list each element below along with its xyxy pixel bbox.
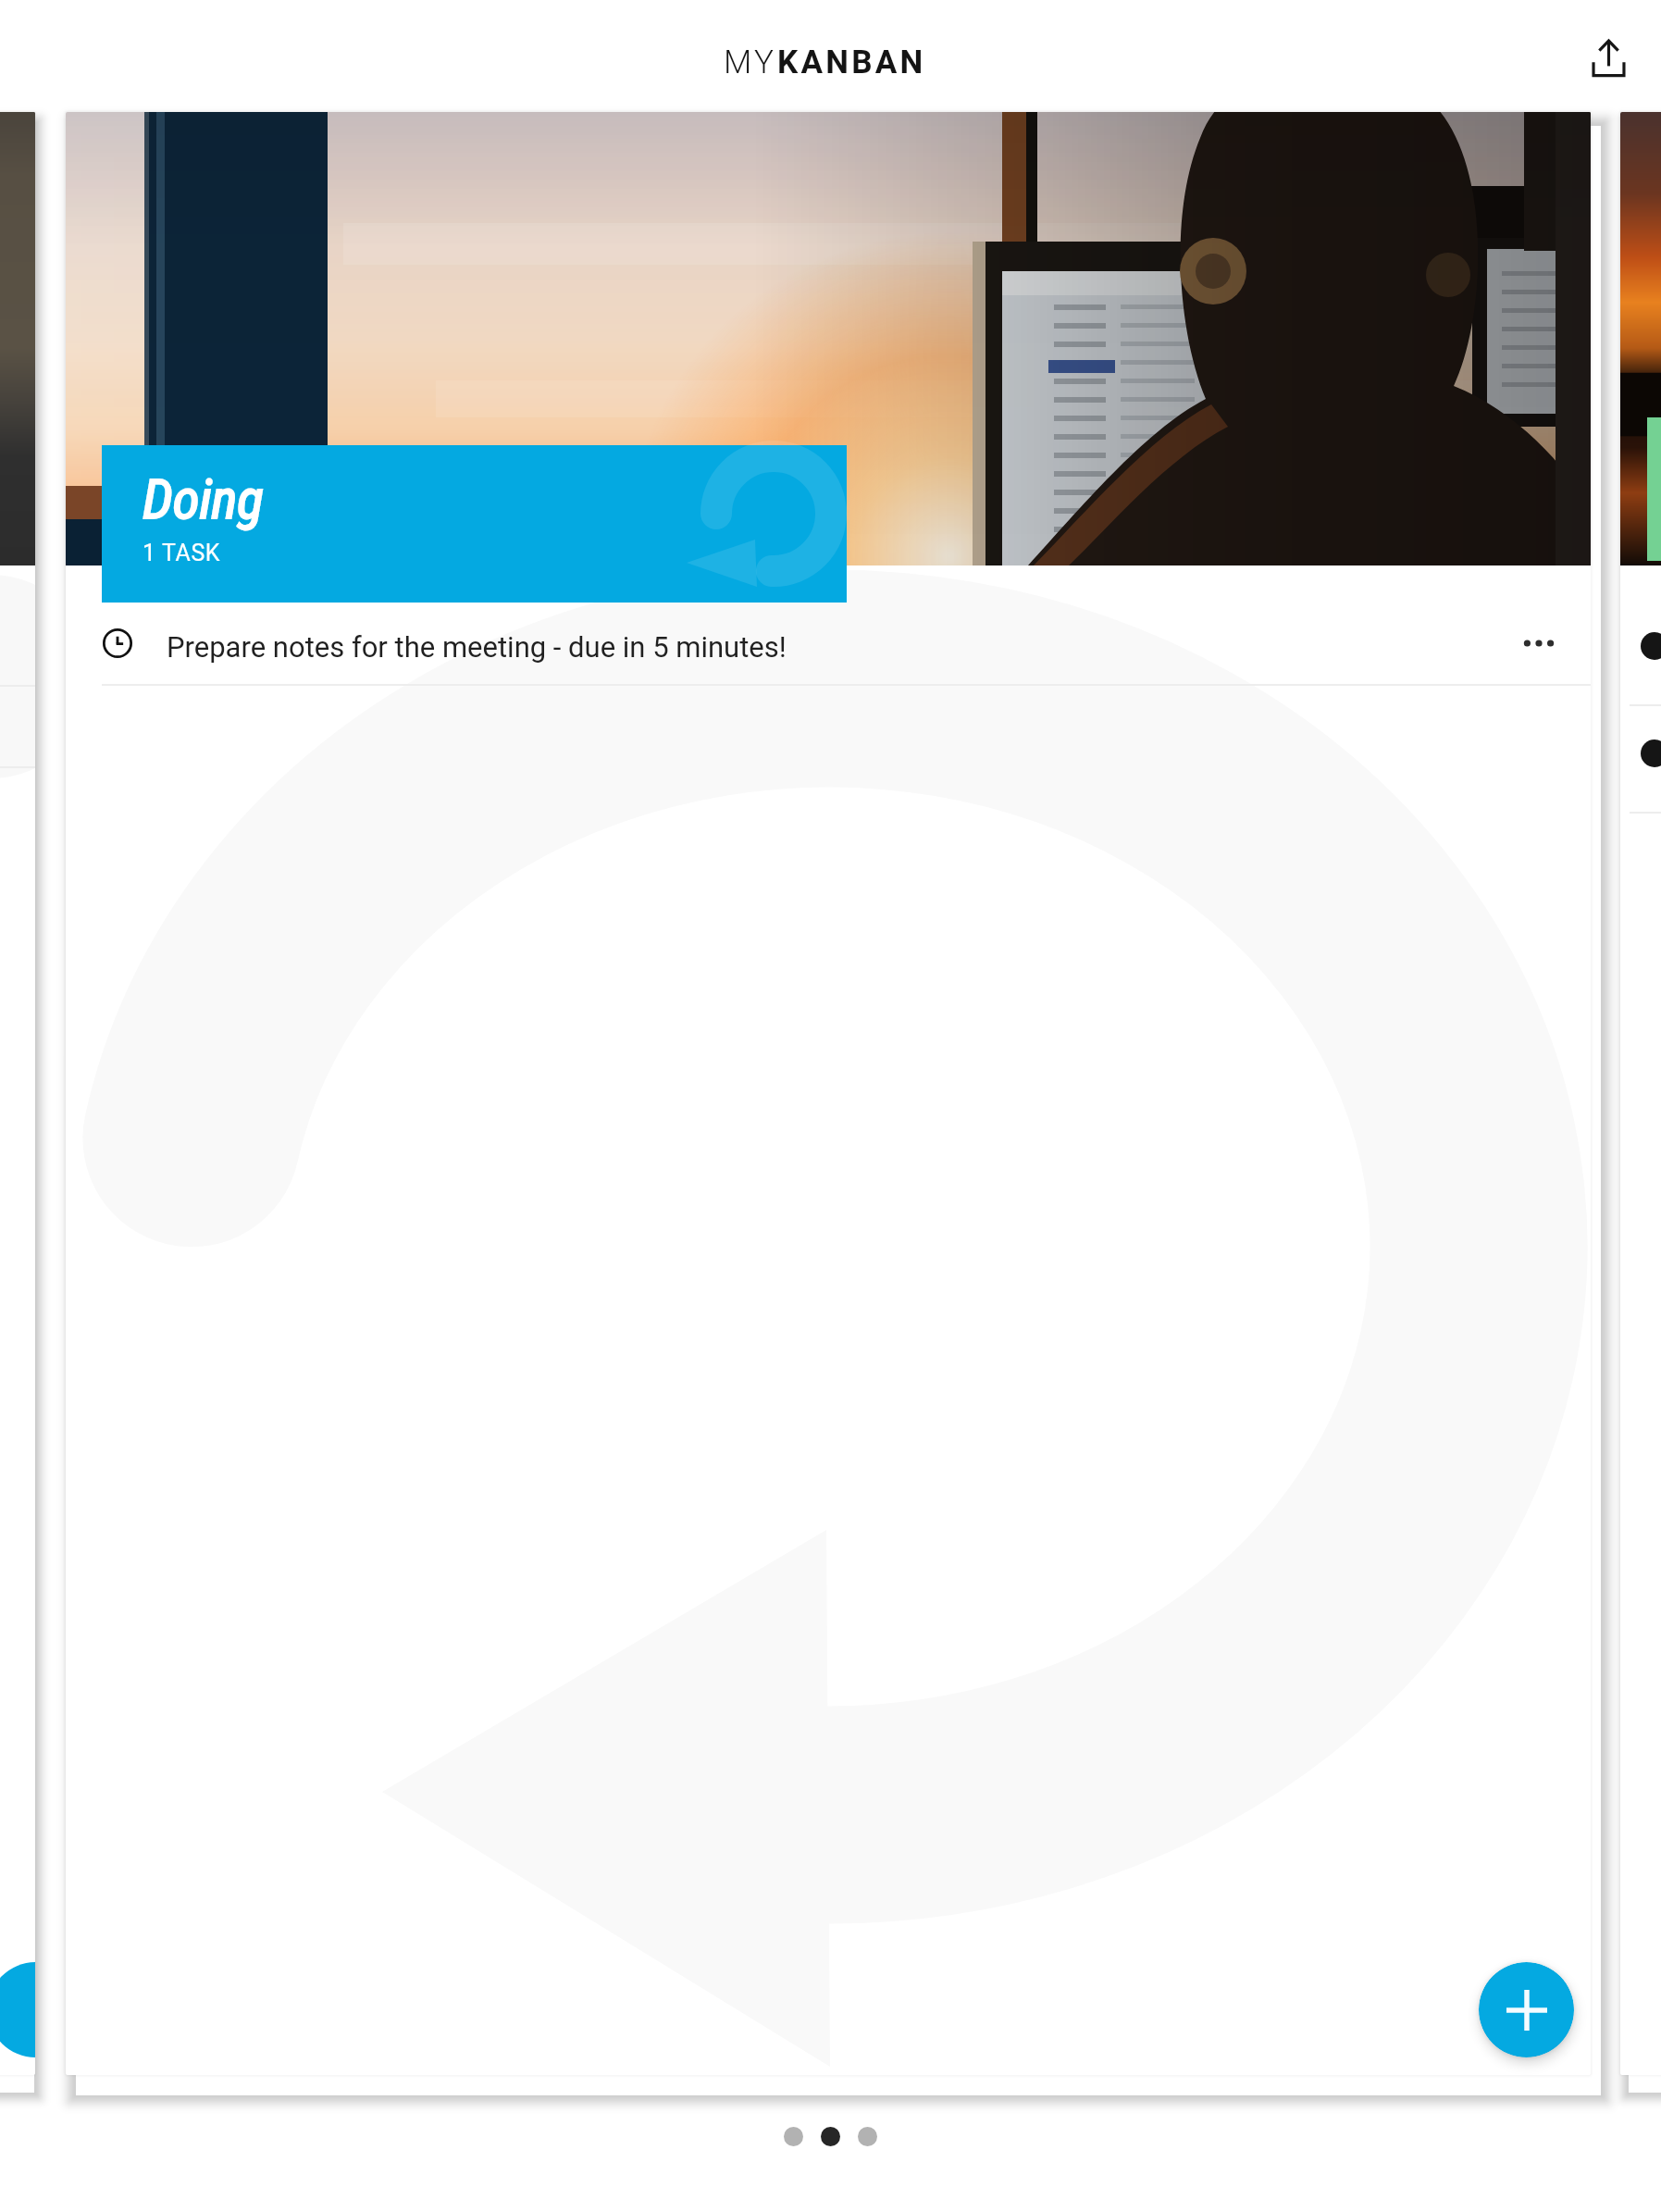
button[interactable]: More options	[1497, 603, 1580, 684]
button[interactable]: Next board list	[1620, 112, 1661, 2075]
button[interactable]: Prepare notes for the meeting - due in 5…	[66, 603, 1591, 684]
button[interactable]: Go to list 1	[784, 2127, 803, 2146]
button[interactable]: Go to list 3	[858, 2127, 877, 2146]
staticText: 1 TASK	[143, 540, 221, 566]
staticText: MY	[724, 43, 777, 81]
staticText: Doing	[143, 467, 264, 531]
button[interactable]: Previous board list	[0, 112, 35, 2075]
button[interactable]: List 2 of 3, current	[821, 2127, 840, 2146]
staticText: KANBAN	[777, 43, 926, 81]
button[interactable]: Add task	[1479, 1962, 1574, 2057]
staticText: Prepare notes for the meeting - due in 5…	[167, 630, 787, 664]
button[interactable]: Doing	[102, 445, 847, 603]
button[interactable]: Share	[1556, 6, 1660, 110]
